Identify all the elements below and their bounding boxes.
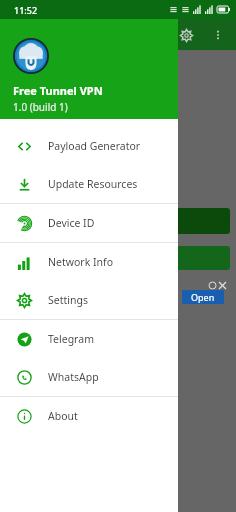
button[interactable] <box>4 208 230 234</box>
staticText: Settings <box>48 293 88 307</box>
button[interactable]: Network Info <box>0 243 178 281</box>
staticText: Payload Generator <box>48 139 141 153</box>
button[interactable]: Open <box>182 290 224 304</box>
staticText: [49.4 kB] <box>6 135 43 147</box>
button[interactable]: About <box>0 397 178 435</box>
staticText: 1.0 (build 1) <box>13 100 68 114</box>
staticText: Free Tunnel VPN <box>13 83 103 98</box>
button[interactable]: WhatsApp <box>0 358 178 396</box>
staticText: WhatsApp <box>48 370 99 384</box>
staticText: Update Resources <box>48 177 138 191</box>
staticText: About <box>48 409 78 423</box>
button[interactable]: Update Resources <box>0 165 178 203</box>
staticText: Telegram <box>48 332 94 346</box>
button[interactable]: Payload Generator <box>0 127 178 165</box>
staticText: 11:52 <box>14 4 38 16</box>
button[interactable]: Telegram <box>0 320 178 358</box>
staticText: Open <box>191 291 215 303</box>
staticText: Network Info <box>48 255 113 269</box>
button[interactable]: Settings <box>176 25 196 45</box>
button[interactable]: + TIME <box>4 246 230 270</box>
button[interactable]: Settings <box>0 281 178 319</box>
button[interactable]: Device ID <box>0 204 178 242</box>
staticText: + TIME <box>111 251 145 265</box>
staticText: Device ID <box>48 216 95 230</box>
button[interactable]: More options <box>208 25 228 45</box>
